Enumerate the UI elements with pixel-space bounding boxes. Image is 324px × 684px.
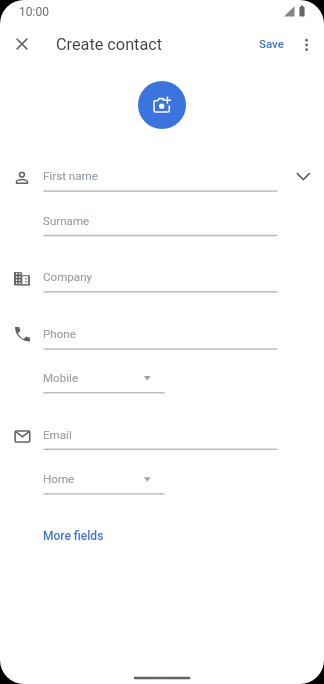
- staticText: Surname: [43, 214, 90, 228]
- staticText: 10:00: [19, 5, 49, 19]
- staticText: Phone: [43, 327, 76, 341]
- button[interactable]: Close: [8, 30, 36, 58]
- staticText: More fields: [43, 529, 104, 543]
- button[interactable]: Save: [252, 33, 291, 54]
- staticText: Mobile: [43, 371, 79, 385]
- button[interactable]: Expand name fields: [291, 164, 315, 188]
- staticText: Home: [43, 472, 75, 486]
- staticText: Email: [43, 428, 72, 442]
- staticText: First name: [43, 169, 98, 183]
- button[interactable]: More fields: [36, 523, 111, 549]
- button[interactable]: Add photo: [138, 81, 186, 129]
- staticText: Create contact: [56, 35, 163, 54]
- staticText: Save: [259, 37, 284, 50]
- button[interactable]: More options: [293, 30, 320, 57]
- staticText: Company: [43, 270, 93, 284]
